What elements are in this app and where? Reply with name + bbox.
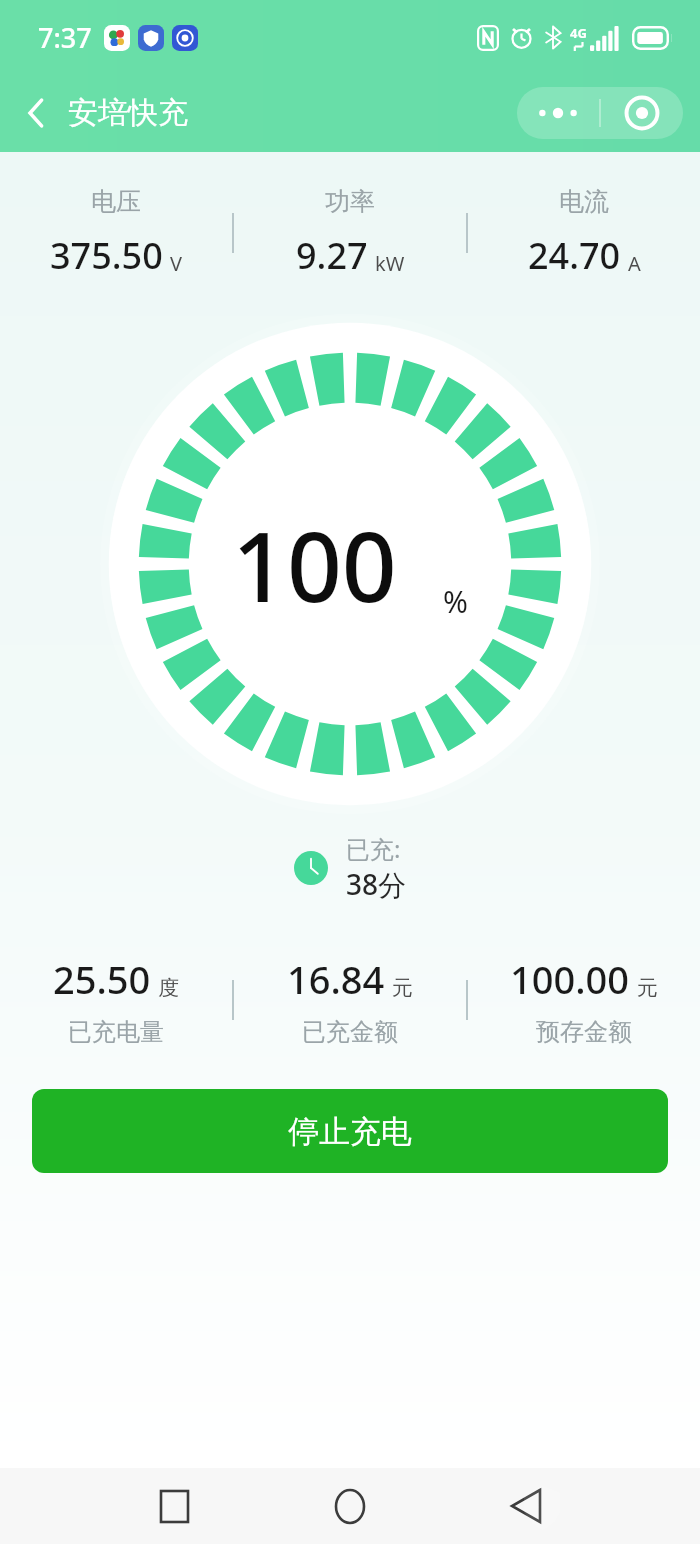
button[interactable]: 停止充电: [32, 1089, 668, 1173]
staticText: 已充:: [346, 832, 401, 865]
staticText: 安培快充: [68, 94, 188, 132]
staticText: 100.00: [510, 953, 630, 1005]
staticText: 16.84: [287, 953, 385, 1005]
staticText: 停止充电: [288, 1112, 412, 1151]
staticText: 电流: [559, 186, 609, 217]
staticText: 元: [637, 975, 658, 1001]
staticText: 已充金额: [302, 1017, 398, 1047]
button[interactable]: Target: [601, 87, 683, 139]
button[interactable]: More options: [517, 87, 599, 139]
staticText: 电压: [91, 186, 141, 217]
button[interactable]: Recent apps: [86, 1468, 262, 1544]
staticText: 4G: [570, 24, 587, 42]
staticText: %: [443, 581, 468, 622]
button[interactable]: Back: [438, 1468, 614, 1544]
staticText: 375.50: [50, 231, 163, 280]
staticText: V: [170, 250, 182, 277]
staticText: 功率: [325, 186, 375, 217]
staticText: 元: [392, 975, 413, 1001]
staticText: 100: [232, 499, 397, 630]
staticText: 38分: [346, 865, 407, 903]
button[interactable]: Home: [262, 1468, 438, 1544]
staticText: A: [628, 250, 641, 277]
staticText: 预存金额: [536, 1017, 632, 1047]
staticText: 25.50: [53, 953, 151, 1005]
staticText: kW: [375, 250, 405, 277]
staticText: 度: [158, 975, 179, 1001]
staticText: 24.70: [528, 231, 621, 280]
staticText: 已充电量: [68, 1017, 164, 1047]
staticText: 9.27: [296, 231, 368, 280]
button[interactable]: Back: [0, 82, 214, 144]
staticText: 7:37: [38, 19, 92, 56]
